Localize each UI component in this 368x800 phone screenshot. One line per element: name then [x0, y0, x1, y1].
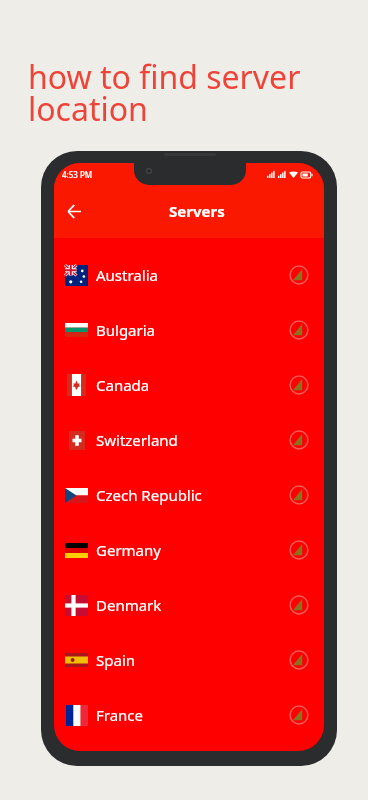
button[interactable]: Spain — [54, 632, 324, 687]
staticText: Canada — [96, 375, 150, 395]
button[interactable]: Canada — [54, 357, 324, 412]
staticText: France — [96, 705, 144, 725]
button[interactable]: Denmark — [54, 577, 324, 632]
button[interactable]: Germany — [54, 522, 324, 577]
staticText: Denmark — [96, 595, 162, 615]
staticText: Australia — [96, 265, 158, 285]
staticText: Spain — [96, 650, 136, 670]
button[interactable]: France — [54, 687, 324, 742]
button[interactable]: Back — [58, 195, 90, 227]
staticText: Switzerland — [96, 430, 178, 450]
button[interactable]: Australia — [54, 247, 324, 302]
staticText: Servers — [169, 201, 225, 221]
button[interactable]: Switzerland — [54, 412, 324, 467]
staticText: Bulgaria — [96, 320, 156, 340]
staticText: how to find server location — [28, 55, 301, 130]
button[interactable]: Czech Republic — [54, 467, 324, 522]
button[interactable]: Bulgaria — [54, 302, 324, 357]
staticText: 4:53 PM — [62, 169, 93, 180]
staticText: Czech Republic — [96, 485, 202, 505]
staticText: Germany — [96, 540, 161, 560]
